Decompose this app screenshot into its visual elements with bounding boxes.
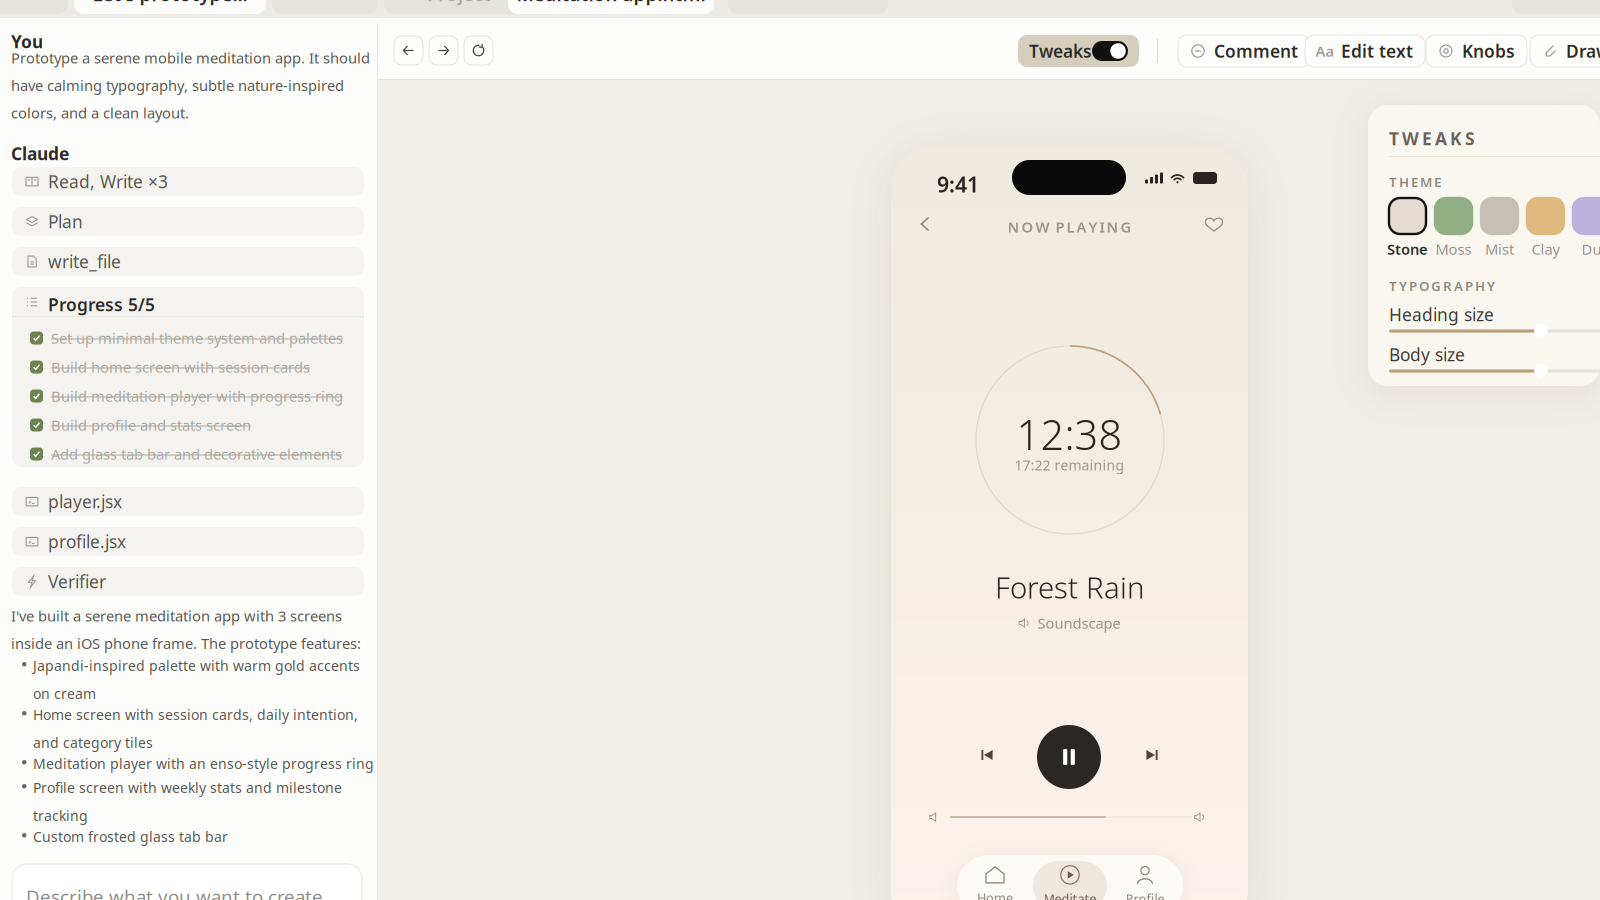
button[interactable]: Meditation app.html bbox=[508, 0, 714, 14]
button[interactable]: Reload bbox=[464, 36, 493, 65]
staticText: Describe what you want to create... bbox=[26, 884, 338, 900]
button[interactable]: player.jsx bbox=[12, 487, 364, 516]
button[interactable]: Favourite bbox=[1203, 213, 1225, 235]
staticText: Claude bbox=[11, 142, 69, 165]
staticText: Plan bbox=[48, 210, 83, 233]
button[interactable]: Previous bbox=[979, 747, 995, 763]
staticText: Build home screen with session cards bbox=[51, 357, 310, 377]
staticText: Home screen with session cards, daily in… bbox=[33, 705, 358, 724]
button[interactable]: Draw bbox=[1530, 35, 1600, 67]
button[interactable]: Pause bbox=[1037, 725, 1101, 789]
button[interactable]: Back bbox=[394, 36, 423, 65]
button[interactable]: Knobs bbox=[1426, 35, 1527, 67]
staticText: Meditation app.html bbox=[516, 0, 705, 6]
staticText: Build meditation player with progress ri… bbox=[51, 386, 343, 406]
staticText: Project bbox=[427, 0, 491, 6]
button[interactable]: profile.jsx bbox=[12, 527, 364, 556]
staticText: Forest Rain bbox=[995, 567, 1144, 607]
button[interactable]: Comment bbox=[1178, 35, 1310, 67]
staticText: Du bbox=[1581, 239, 1600, 259]
staticText: I've built a serene meditation app with … bbox=[11, 606, 342, 625]
staticText: Mist bbox=[1485, 239, 1514, 259]
button[interactable]: Home bbox=[957, 855, 1032, 900]
button[interactable]: Back bbox=[915, 213, 937, 235]
staticText: Profile bbox=[1125, 890, 1164, 900]
staticText: player.jsx bbox=[48, 490, 122, 513]
staticText: Profile screen with weekly stats and mil… bbox=[33, 778, 342, 797]
button[interactable]: Plan bbox=[12, 207, 364, 236]
staticText: Soundscape bbox=[1037, 613, 1120, 633]
staticText: Meditation player with an enso-style pro… bbox=[33, 754, 374, 773]
staticText: Set up minimal theme system and palettes bbox=[51, 328, 343, 348]
staticText: colors, and a clean layout. bbox=[11, 103, 189, 122]
staticText: Heading size bbox=[1389, 303, 1494, 326]
staticText: T H E M E bbox=[1389, 173, 1441, 191]
button[interactable]: Du bbox=[1573, 198, 1600, 256]
staticText: have calming typography, subtle nature-i… bbox=[11, 75, 344, 95]
staticText: inside an iOS phone frame. The prototype… bbox=[11, 633, 361, 653]
staticText: Let's prototype... bbox=[92, 0, 247, 6]
staticText: Build profile and stats screen bbox=[51, 415, 251, 435]
staticText: Read, Write ×3 bbox=[48, 170, 168, 193]
button[interactable]: Mist bbox=[1481, 198, 1518, 256]
staticText: Aa bbox=[1315, 41, 1334, 61]
button[interactable]: write_file bbox=[12, 247, 364, 276]
staticText: 17:22 remaining bbox=[1014, 455, 1124, 475]
staticText: Tweaks bbox=[1029, 39, 1092, 62]
button[interactable]: Profile bbox=[1107, 855, 1182, 900]
staticText: T W E A K S bbox=[1389, 127, 1475, 150]
button[interactable]: Stone bbox=[1389, 198, 1426, 256]
staticText: Home bbox=[977, 889, 1013, 900]
button[interactable]: Next bbox=[1144, 747, 1160, 763]
staticText: N O W P L A Y I N G bbox=[1007, 217, 1131, 236]
button[interactable]: Verifier bbox=[12, 567, 364, 596]
button[interactable]: Moss bbox=[1435, 198, 1472, 256]
staticText: and category tiles bbox=[33, 733, 153, 752]
staticText: Comment bbox=[1214, 39, 1298, 62]
staticText: You bbox=[11, 30, 43, 53]
staticText: Knobs bbox=[1462, 39, 1515, 62]
staticText: tracking bbox=[33, 806, 88, 825]
staticText: Progress 5/5 bbox=[48, 293, 155, 316]
button[interactable]: Meditate bbox=[1032, 855, 1107, 900]
button[interactable]: Forward bbox=[429, 36, 458, 65]
button[interactable]: Project bbox=[384, 0, 534, 14]
staticText: T Y P O G R A P H Y bbox=[1389, 277, 1495, 295]
staticText: write_file bbox=[48, 250, 121, 273]
staticText: Draw bbox=[1566, 39, 1600, 62]
staticText: profile.jsx bbox=[48, 530, 126, 553]
button[interactable]: Describe what you want to create... bbox=[12, 864, 362, 900]
button[interactable]: Aa bbox=[1305, 35, 1425, 67]
staticText: on cream bbox=[33, 684, 96, 703]
staticText: Meditate bbox=[1043, 890, 1096, 900]
staticText: Japandi-inspired palette with warm gold … bbox=[33, 656, 360, 675]
staticText: 9:41 bbox=[937, 170, 979, 198]
staticText: Moss bbox=[1435, 239, 1471, 259]
staticText: Add glass tab bar and decorative element… bbox=[51, 444, 342, 464]
button[interactable]: Read, Write ×3 bbox=[12, 167, 364, 196]
button[interactable]: Let's prototype... bbox=[74, 0, 266, 14]
staticText: Edit text bbox=[1341, 39, 1413, 62]
staticText: Clay bbox=[1531, 239, 1559, 259]
staticText: Prototype a serene mobile meditation app… bbox=[11, 48, 370, 67]
staticText: Custom frosted glass tab bar bbox=[33, 827, 228, 846]
staticText: Verifier bbox=[48, 570, 106, 593]
staticText: Stone bbox=[1387, 239, 1428, 259]
staticText: Body size bbox=[1389, 343, 1465, 366]
button[interactable]: Clay bbox=[1527, 198, 1564, 256]
button[interactable]: Tweaks bbox=[1018, 35, 1139, 67]
staticText: 12:38 bbox=[1016, 406, 1122, 462]
